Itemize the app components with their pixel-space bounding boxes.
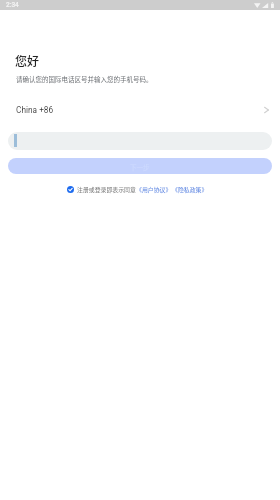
staticText: China +86 (16, 105, 54, 115)
button[interactable]: Phone number input (8, 132, 272, 150)
other: Wifi, signal and battery status (254, 3, 274, 8)
button[interactable]: Agree to terms checkbox (67, 186, 74, 193)
button[interactable]: China +86 (0, 100, 280, 119)
staticText: 注册或登录即表示同意 (77, 185, 136, 194)
button[interactable]: 下一步 (8, 158, 272, 174)
staticText: 2:34 (6, 1, 19, 9)
staticText: 请确认您的国际电话区号并输入您的手机号码。 (16, 74, 153, 83)
button[interactable]: 《隐私政策》 (172, 185, 208, 194)
button[interactable]: 《用户协议》 (136, 185, 172, 194)
staticText: 您好 (15, 52, 40, 69)
